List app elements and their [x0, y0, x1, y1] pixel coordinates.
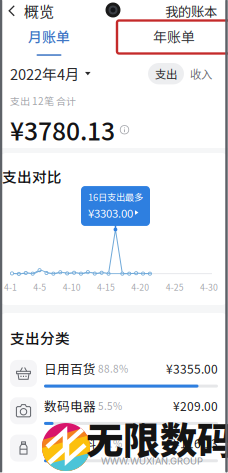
- staticText: 无限数码: [86, 411, 228, 465]
- button[interactable]: 我的账本: [165, 0, 228, 22]
- staticText: ¥116.13: [173, 434, 218, 452]
- staticText: [96, 435, 98, 451]
- button[interactable]: Back: [0, 0, 62, 22]
- staticText: 日用百货: [44, 359, 96, 377]
- button[interactable]: 收入: [184, 63, 218, 84]
- staticText: 支出分类: [10, 327, 70, 348]
- staticText: 4-1: [4, 281, 17, 293]
- staticText: 月账单: [28, 26, 70, 46]
- staticText: 3.1%: [98, 436, 122, 450]
- staticText: 4-20: [131, 281, 149, 293]
- staticText: ¥3780.13: [10, 112, 115, 148]
- button[interactable]: 年账单: [132, 18, 216, 61]
- button[interactable]: 酒水饮料: [10, 434, 218, 462]
- staticText: 4-5: [33, 281, 46, 293]
- staticText: 2022年4月: [10, 63, 80, 84]
- staticText: 5.5%: [98, 398, 122, 413]
- staticText: ¥3303.00: [88, 205, 133, 221]
- staticText: 酒水饮料: [44, 434, 96, 452]
- staticText: 概览: [24, 0, 54, 22]
- staticText: 88.8%: [98, 361, 128, 376]
- staticText: 支出: [155, 65, 177, 82]
- staticText: ¥209.00: [173, 397, 218, 414]
- button[interactable]: 2022年4月: [10, 63, 91, 84]
- button[interactable]: 日用百货: [10, 359, 218, 387]
- staticText: 数码电器: [44, 397, 96, 415]
- staticText: 16日支出最多: [88, 190, 143, 203]
- staticText: 我的账本: [165, 1, 217, 21]
- staticText: 4-25: [166, 281, 184, 293]
- button[interactable]: 月账单: [7, 18, 91, 61]
- staticText: 4-15: [97, 281, 115, 293]
- staticText: 支出 12笔 合计: [10, 93, 76, 108]
- staticText: 年账单: [153, 26, 195, 46]
- staticText: 支出对比: [2, 165, 62, 187]
- staticText: 收入: [190, 65, 212, 82]
- button[interactable]: 数码电器: [10, 397, 218, 425]
- staticText: WWW.WUXIAN.GROUP: [101, 455, 203, 467]
- staticText: ¥3355.00: [166, 360, 218, 377]
- staticText: 4-30: [200, 281, 218, 293]
- button[interactable]: 支出: [148, 63, 184, 84]
- staticText: 4-10: [63, 281, 81, 293]
